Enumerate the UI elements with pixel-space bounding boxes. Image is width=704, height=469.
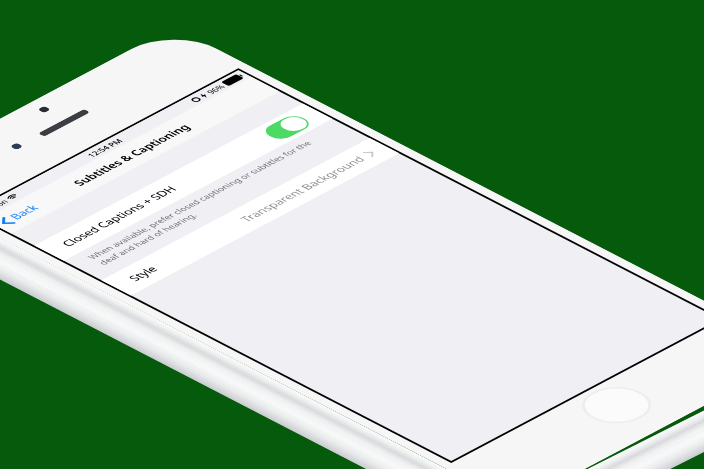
staticText: Back xyxy=(5,202,43,222)
staticText: Transparent Background xyxy=(236,154,369,224)
staticText: 12:54 PM xyxy=(84,137,125,159)
staticText: Subtitles & Captioning xyxy=(69,122,194,188)
staticText: Verizon xyxy=(0,198,11,216)
button[interactable]: Closed Captions + SDH xyxy=(34,103,332,261)
staticText: When available, prefer closed captioning… xyxy=(85,139,326,267)
button[interactable]: Back xyxy=(0,199,48,230)
staticText: 96% xyxy=(204,83,228,96)
button[interactable]: Closed Captions toggle xyxy=(260,113,315,142)
staticText: Closed Captions + SDH xyxy=(58,184,181,249)
staticText: Style xyxy=(124,264,162,283)
button[interactable]: Style xyxy=(101,138,399,295)
